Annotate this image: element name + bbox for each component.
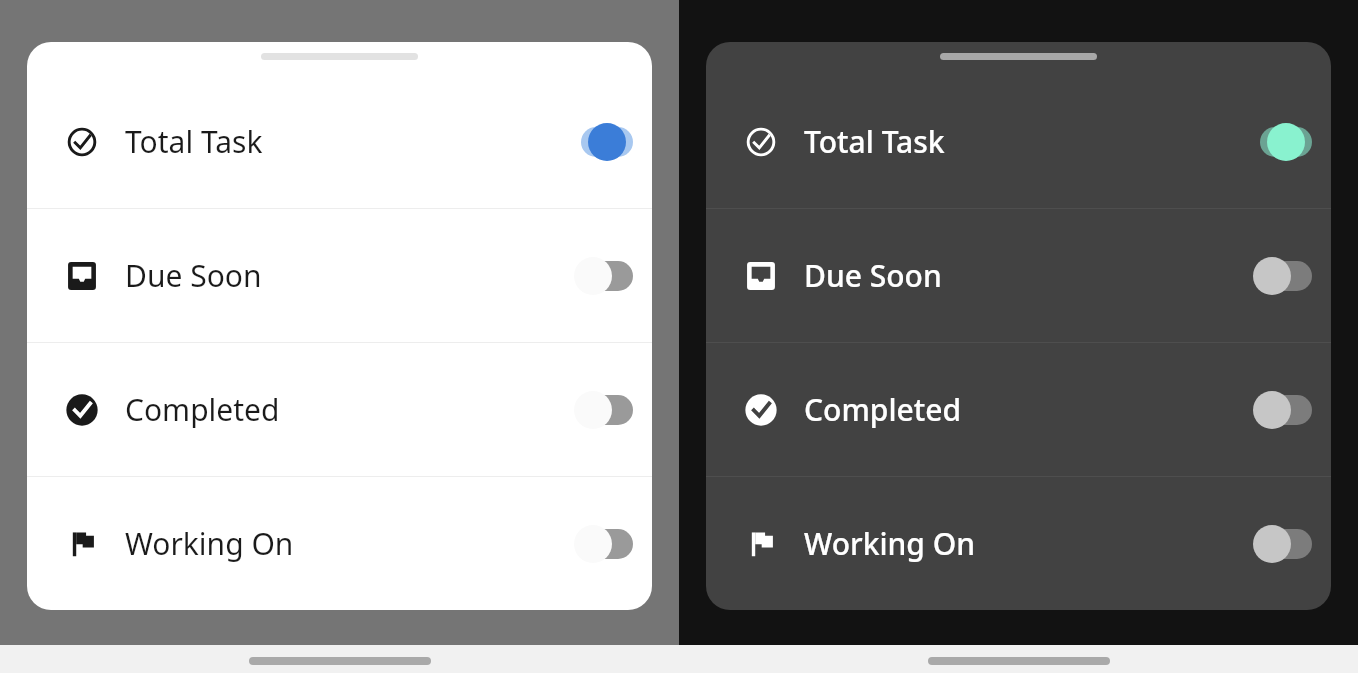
button[interactable]: Total Task — [27, 75, 652, 208]
staticText: Due Soon — [125, 255, 262, 296]
staticText: Completed — [804, 389, 962, 430]
staticText: Completed — [125, 389, 280, 430]
staticText: Working On — [804, 523, 976, 564]
button[interactable]: Completed — [706, 343, 1331, 476]
button[interactable]: Off — [1253, 257, 1305, 295]
button[interactable]: Working On — [27, 477, 652, 610]
button[interactable]: On — [1253, 123, 1305, 161]
staticText: Working On — [125, 523, 294, 564]
button[interactable]: Off — [1253, 391, 1305, 429]
button[interactable]: Off — [574, 391, 626, 429]
button[interactable]: Working On — [706, 477, 1331, 610]
button[interactable]: Off — [574, 525, 626, 563]
button[interactable]: On — [574, 123, 626, 161]
staticText: Due Soon — [804, 255, 942, 296]
staticText: Total Task — [125, 121, 263, 162]
button[interactable]: Off — [1253, 525, 1305, 563]
button[interactable]: Completed — [27, 343, 652, 476]
button[interactable]: Total Task — [706, 75, 1331, 208]
staticText: Total Task — [804, 121, 945, 162]
button[interactable]: Due Soon — [27, 209, 652, 342]
button[interactable]: Off — [574, 257, 626, 295]
button[interactable]: Due Soon — [706, 209, 1331, 342]
